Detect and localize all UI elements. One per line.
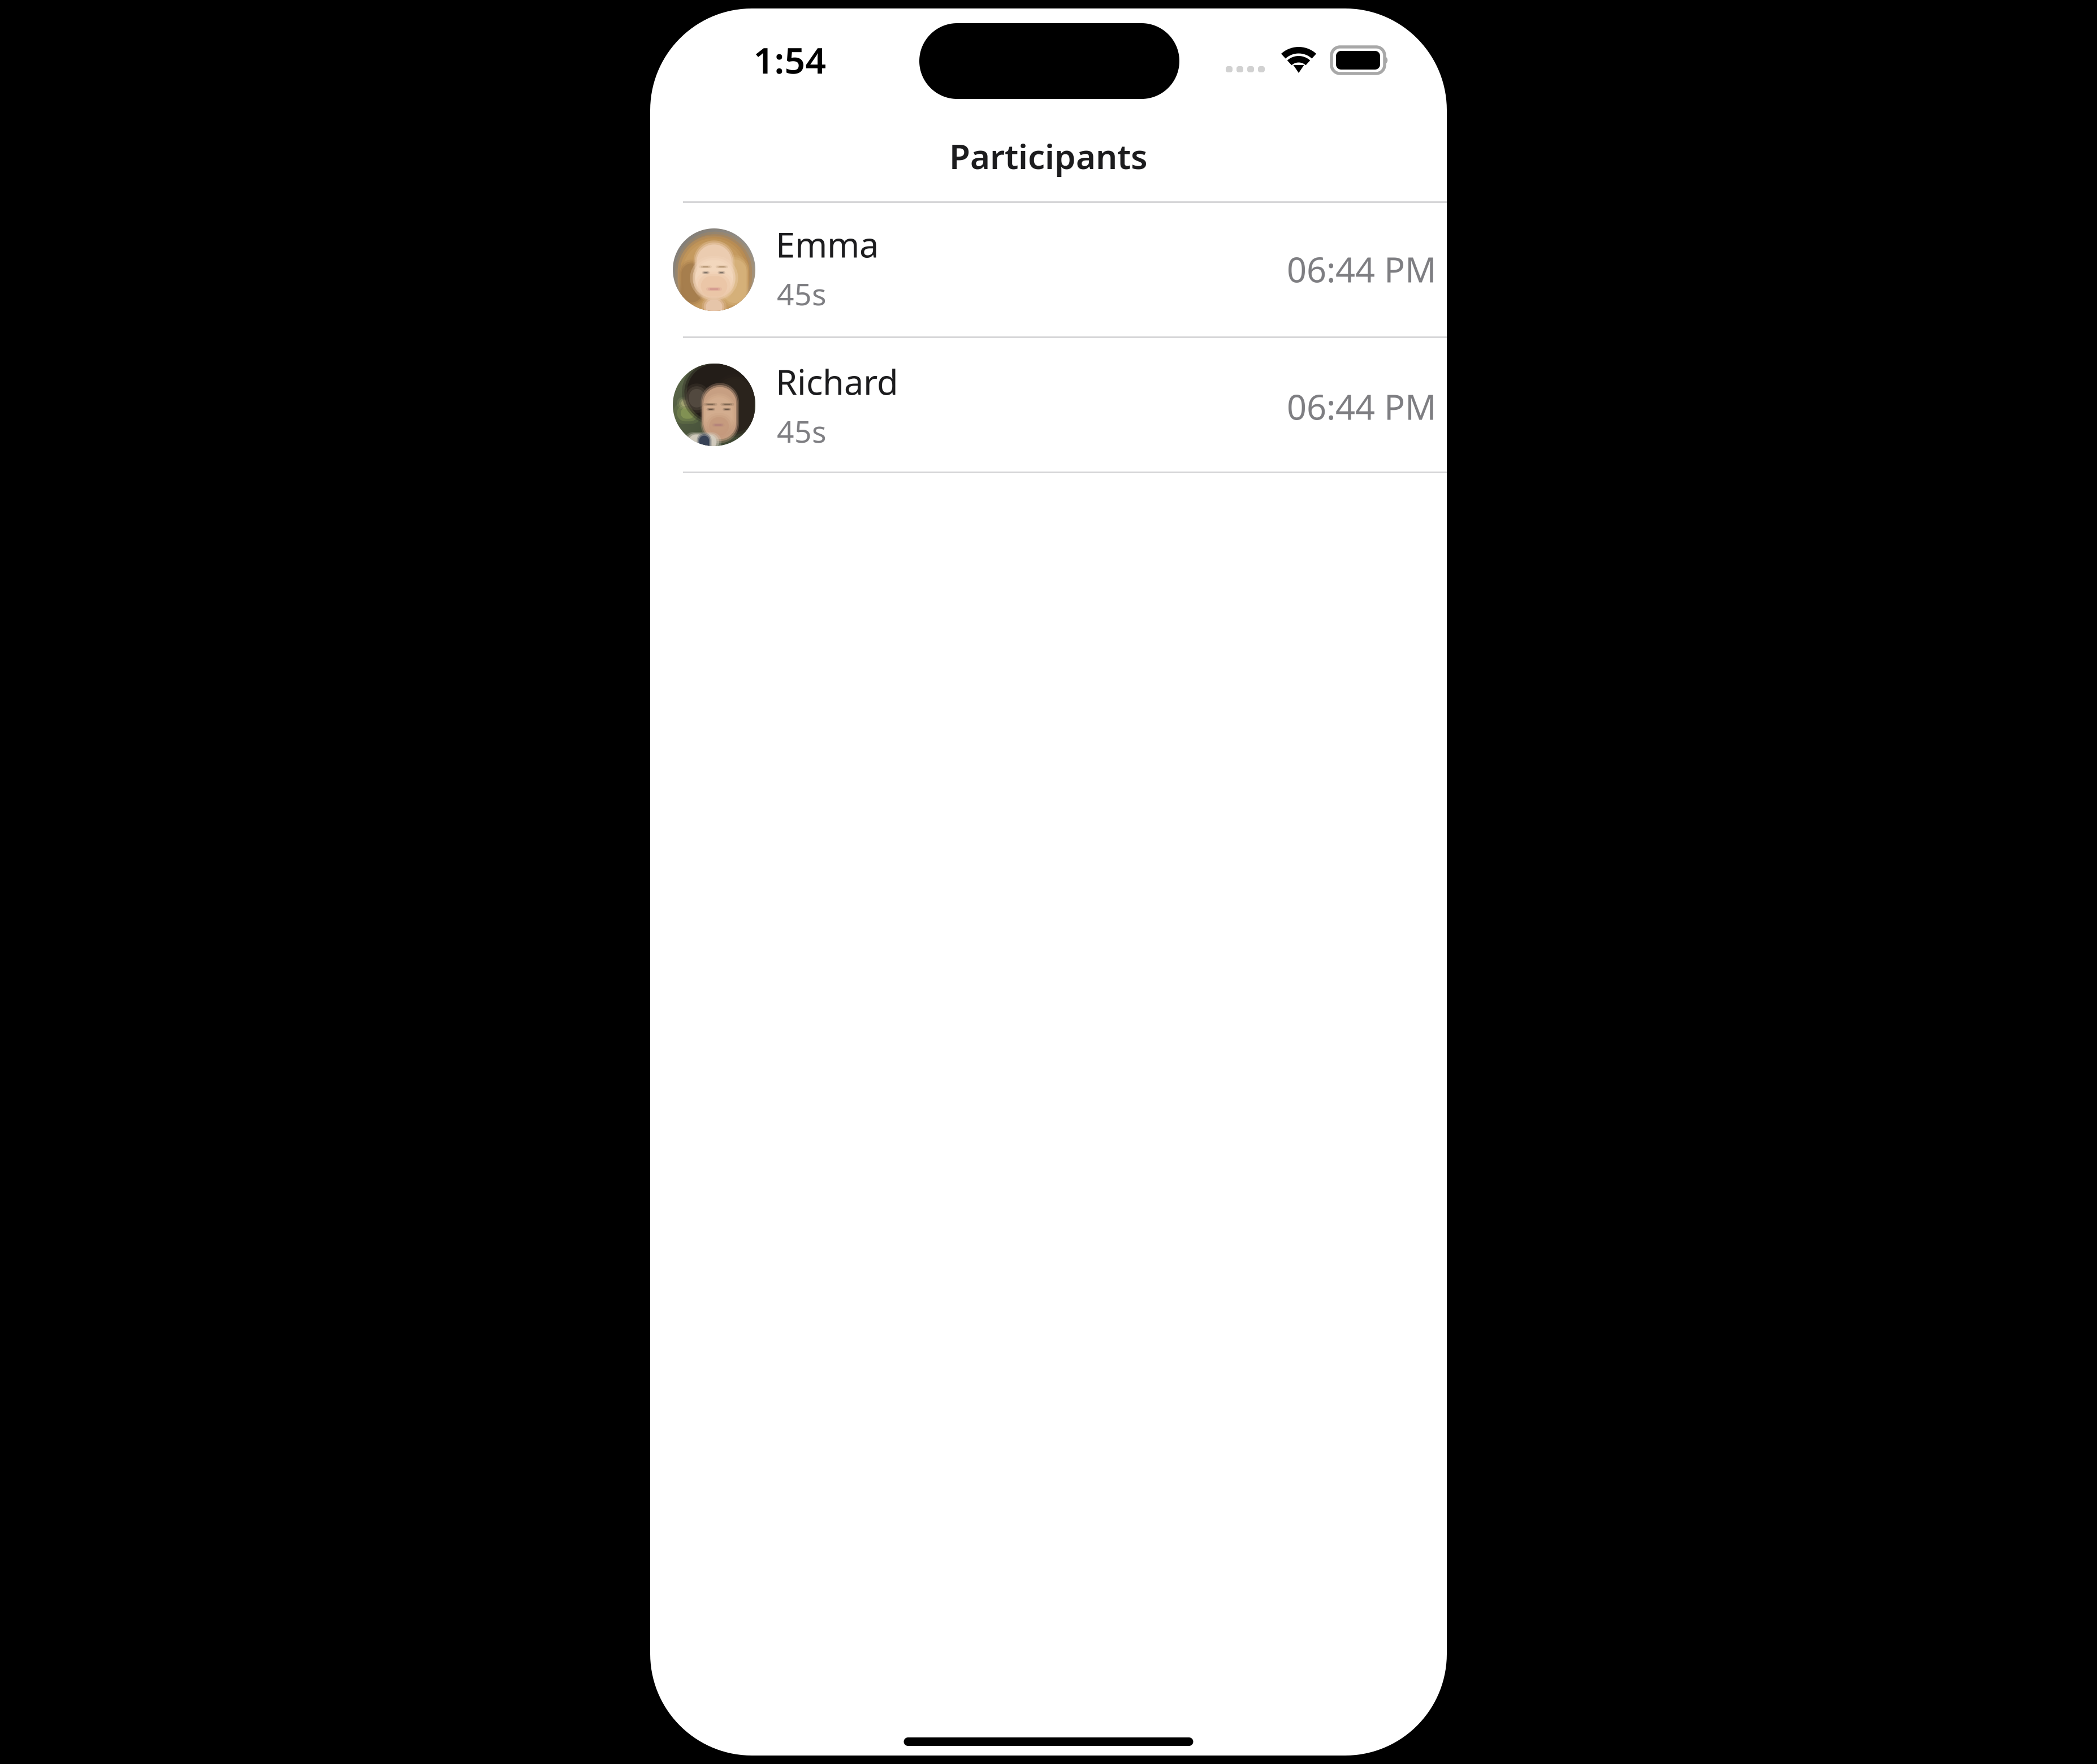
staticText: 45s bbox=[777, 411, 827, 451]
staticText: Emma bbox=[776, 221, 879, 267]
staticText: 06:44 PM bbox=[1287, 246, 1437, 292]
staticText: 06:44 PM bbox=[1287, 383, 1437, 429]
staticText: Participants bbox=[949, 133, 1148, 178]
staticText: Richard bbox=[776, 358, 898, 404]
staticText: 45s bbox=[777, 274, 827, 314]
button[interactable]: Richard bbox=[650, 340, 1447, 474]
button[interactable]: Emma bbox=[650, 203, 1447, 336]
staticText: 1:54 bbox=[753, 36, 826, 84]
